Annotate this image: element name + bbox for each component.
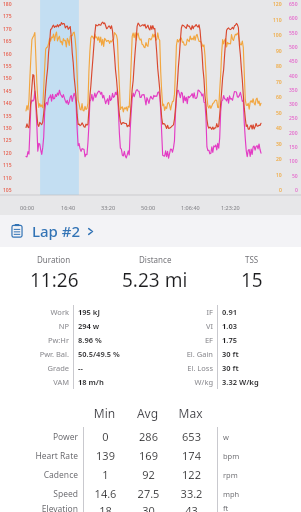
staticText: 653 (170, 429, 213, 444)
staticText: ft (223, 503, 229, 512)
staticText: 600 (289, 15, 298, 22)
staticText: Speed (0, 488, 78, 500)
staticText: 135 (3, 113, 12, 120)
staticText: 11:26 (30, 267, 79, 293)
staticText: 92 (127, 467, 170, 482)
staticText: 294 w (78, 321, 150, 331)
staticText: Min (83, 405, 126, 421)
staticText: 14.6 (84, 486, 127, 501)
staticText: 150 (289, 144, 298, 151)
staticText: Grade (6, 363, 69, 373)
staticText: 00:00 (20, 204, 35, 211)
staticText: 169 (127, 448, 170, 463)
staticText: 0 (279, 187, 282, 194)
staticText: 18 (84, 503, 127, 512)
staticText: 8.96 % (78, 335, 150, 345)
staticText: 500 (289, 44, 298, 51)
staticText: NP (6, 321, 69, 331)
staticText: 300 (289, 101, 298, 108)
staticText: 60 (276, 94, 282, 101)
staticText: 30 ft (222, 349, 295, 359)
staticText: 0 (84, 429, 127, 444)
staticText: Heart Rate (0, 450, 78, 462)
staticText: Max (169, 405, 212, 421)
staticText: 50.5/49.5 % (78, 349, 150, 359)
staticText: 33:20 (101, 204, 116, 211)
staticText: 0 (295, 187, 298, 194)
staticText: rpm (223, 470, 238, 480)
staticText: 195 kJ (78, 307, 150, 317)
staticText: 650 (289, 1, 298, 8)
staticText: Cadence (0, 469, 78, 481)
staticText: VAM (6, 377, 69, 387)
staticText: 550 (289, 30, 298, 37)
staticText: 40 (276, 125, 282, 132)
staticText: 155 (3, 63, 12, 70)
staticText: 174 (170, 448, 213, 463)
staticText: 18 m/h (78, 377, 150, 387)
staticText: 1:23:20 (221, 204, 240, 211)
staticText: Distance (139, 254, 172, 265)
staticText: 43 (170, 503, 213, 512)
staticText: 139 (84, 448, 127, 463)
staticText: 30 ft (222, 363, 295, 373)
staticText: 100 (273, 32, 282, 39)
staticText: 100 (289, 158, 298, 165)
staticText: 1.03 (222, 321, 295, 331)
staticText: 175 (3, 13, 12, 20)
button[interactable]: Lap #2 (0, 215, 301, 247)
staticText: 50 (276, 110, 282, 117)
staticText: 450 (289, 58, 298, 65)
staticText: 286 (127, 429, 170, 444)
staticText: 200 (289, 130, 298, 137)
staticText: 1:06:40 (181, 204, 200, 211)
staticText: 30 (127, 503, 170, 512)
staticText: TSS (245, 254, 259, 265)
staticText: Work (6, 307, 69, 317)
staticText: Power (0, 431, 78, 443)
staticText: 140 (3, 100, 12, 107)
staticText: 350 (289, 87, 298, 94)
staticText: IF (150, 307, 213, 317)
staticText: 1.75 (222, 335, 295, 345)
staticText: 70 (276, 79, 282, 86)
staticText: -- (78, 363, 150, 373)
staticText: 1 (84, 467, 127, 482)
staticText: Avg (126, 405, 169, 421)
staticText: 90 (276, 48, 282, 55)
staticText: 10 (276, 172, 282, 179)
staticText: 122 (170, 467, 213, 482)
staticText: 50:00 (141, 204, 156, 211)
staticText: bpm (223, 451, 240, 461)
staticText: Elevation (0, 503, 78, 512)
staticText: 120 (273, 1, 282, 8)
staticText: EF (150, 335, 213, 345)
staticText: 160 (3, 51, 12, 58)
staticText: 5.23 mi (122, 267, 188, 293)
staticText: 30 (276, 141, 282, 148)
staticText: 130 (3, 125, 12, 132)
staticText: 150 (3, 75, 12, 82)
staticText: mph (223, 489, 240, 499)
staticText: 3.32 W/kg (222, 377, 295, 387)
staticText: 80 (276, 63, 282, 70)
staticText: 27.5 (127, 486, 170, 501)
staticText: 16:40 (61, 204, 76, 211)
staticText: 170 (3, 26, 12, 33)
staticText: 125 (3, 137, 12, 144)
staticText: VI (150, 321, 213, 331)
staticText: 145 (3, 88, 12, 95)
staticText: Pw:Hr (6, 335, 69, 345)
staticText: El. Loss (150, 363, 213, 373)
staticText: 180 (3, 1, 12, 8)
staticText: 105 (3, 187, 12, 194)
staticText: 110 (3, 175, 12, 182)
staticText: w (223, 432, 229, 442)
staticText: 115 (3, 162, 12, 169)
staticText: El. Gain (150, 349, 213, 359)
staticText: 0.91 (222, 307, 295, 317)
staticText: 165 (3, 38, 12, 45)
staticText: Pwr. Bal. (6, 349, 69, 359)
staticText: 33.2 (170, 486, 213, 501)
staticText: 50 (292, 173, 298, 180)
